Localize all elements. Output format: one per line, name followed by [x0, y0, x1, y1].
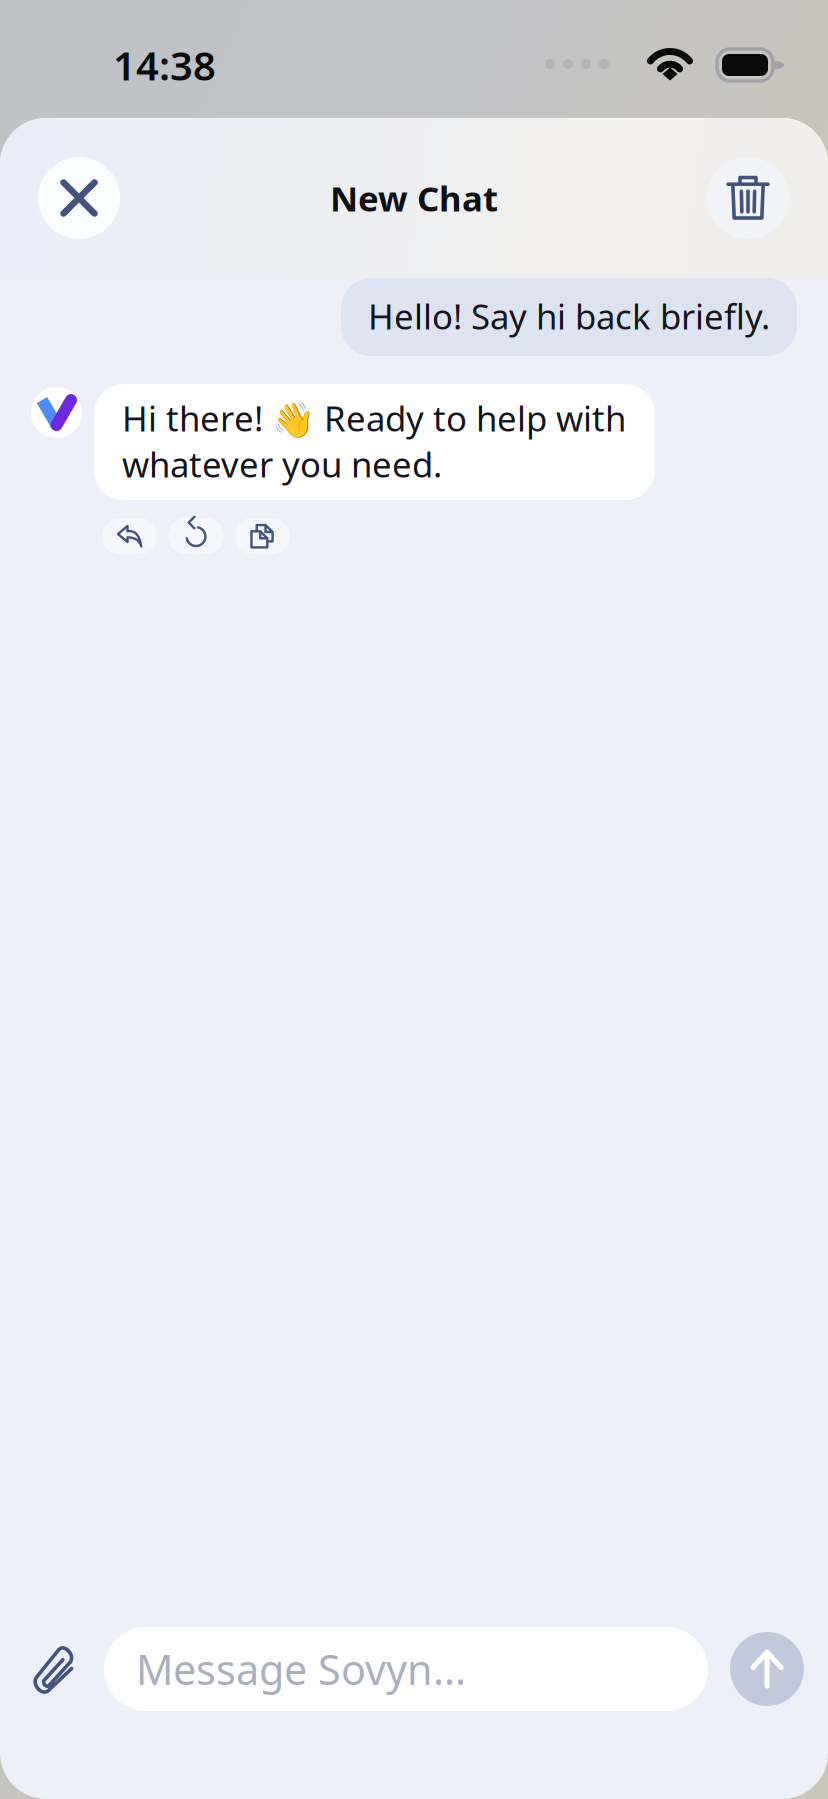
button[interactable]: Reply [102, 518, 158, 554]
staticText: New Chat [330, 175, 498, 221]
button[interactable]: Attach file [0, 1627, 104, 1711]
staticText: Hello! Say hi back briefly. [368, 293, 770, 339]
button[interactable]: Regenerate [168, 518, 224, 554]
staticText: Hi there! 👋 Ready to help with whatever … [122, 395, 626, 487]
button[interactable]: Copy [234, 518, 290, 554]
button[interactable]: Close [38, 157, 120, 239]
button[interactable]: Delete chat [707, 157, 789, 239]
button[interactable]: Message Sovyn... [104, 1627, 708, 1711]
staticText: 14:38 [113, 38, 216, 91]
button[interactable]: Send [730, 1632, 804, 1706]
staticText: Message Sovyn... [136, 1642, 466, 1696]
